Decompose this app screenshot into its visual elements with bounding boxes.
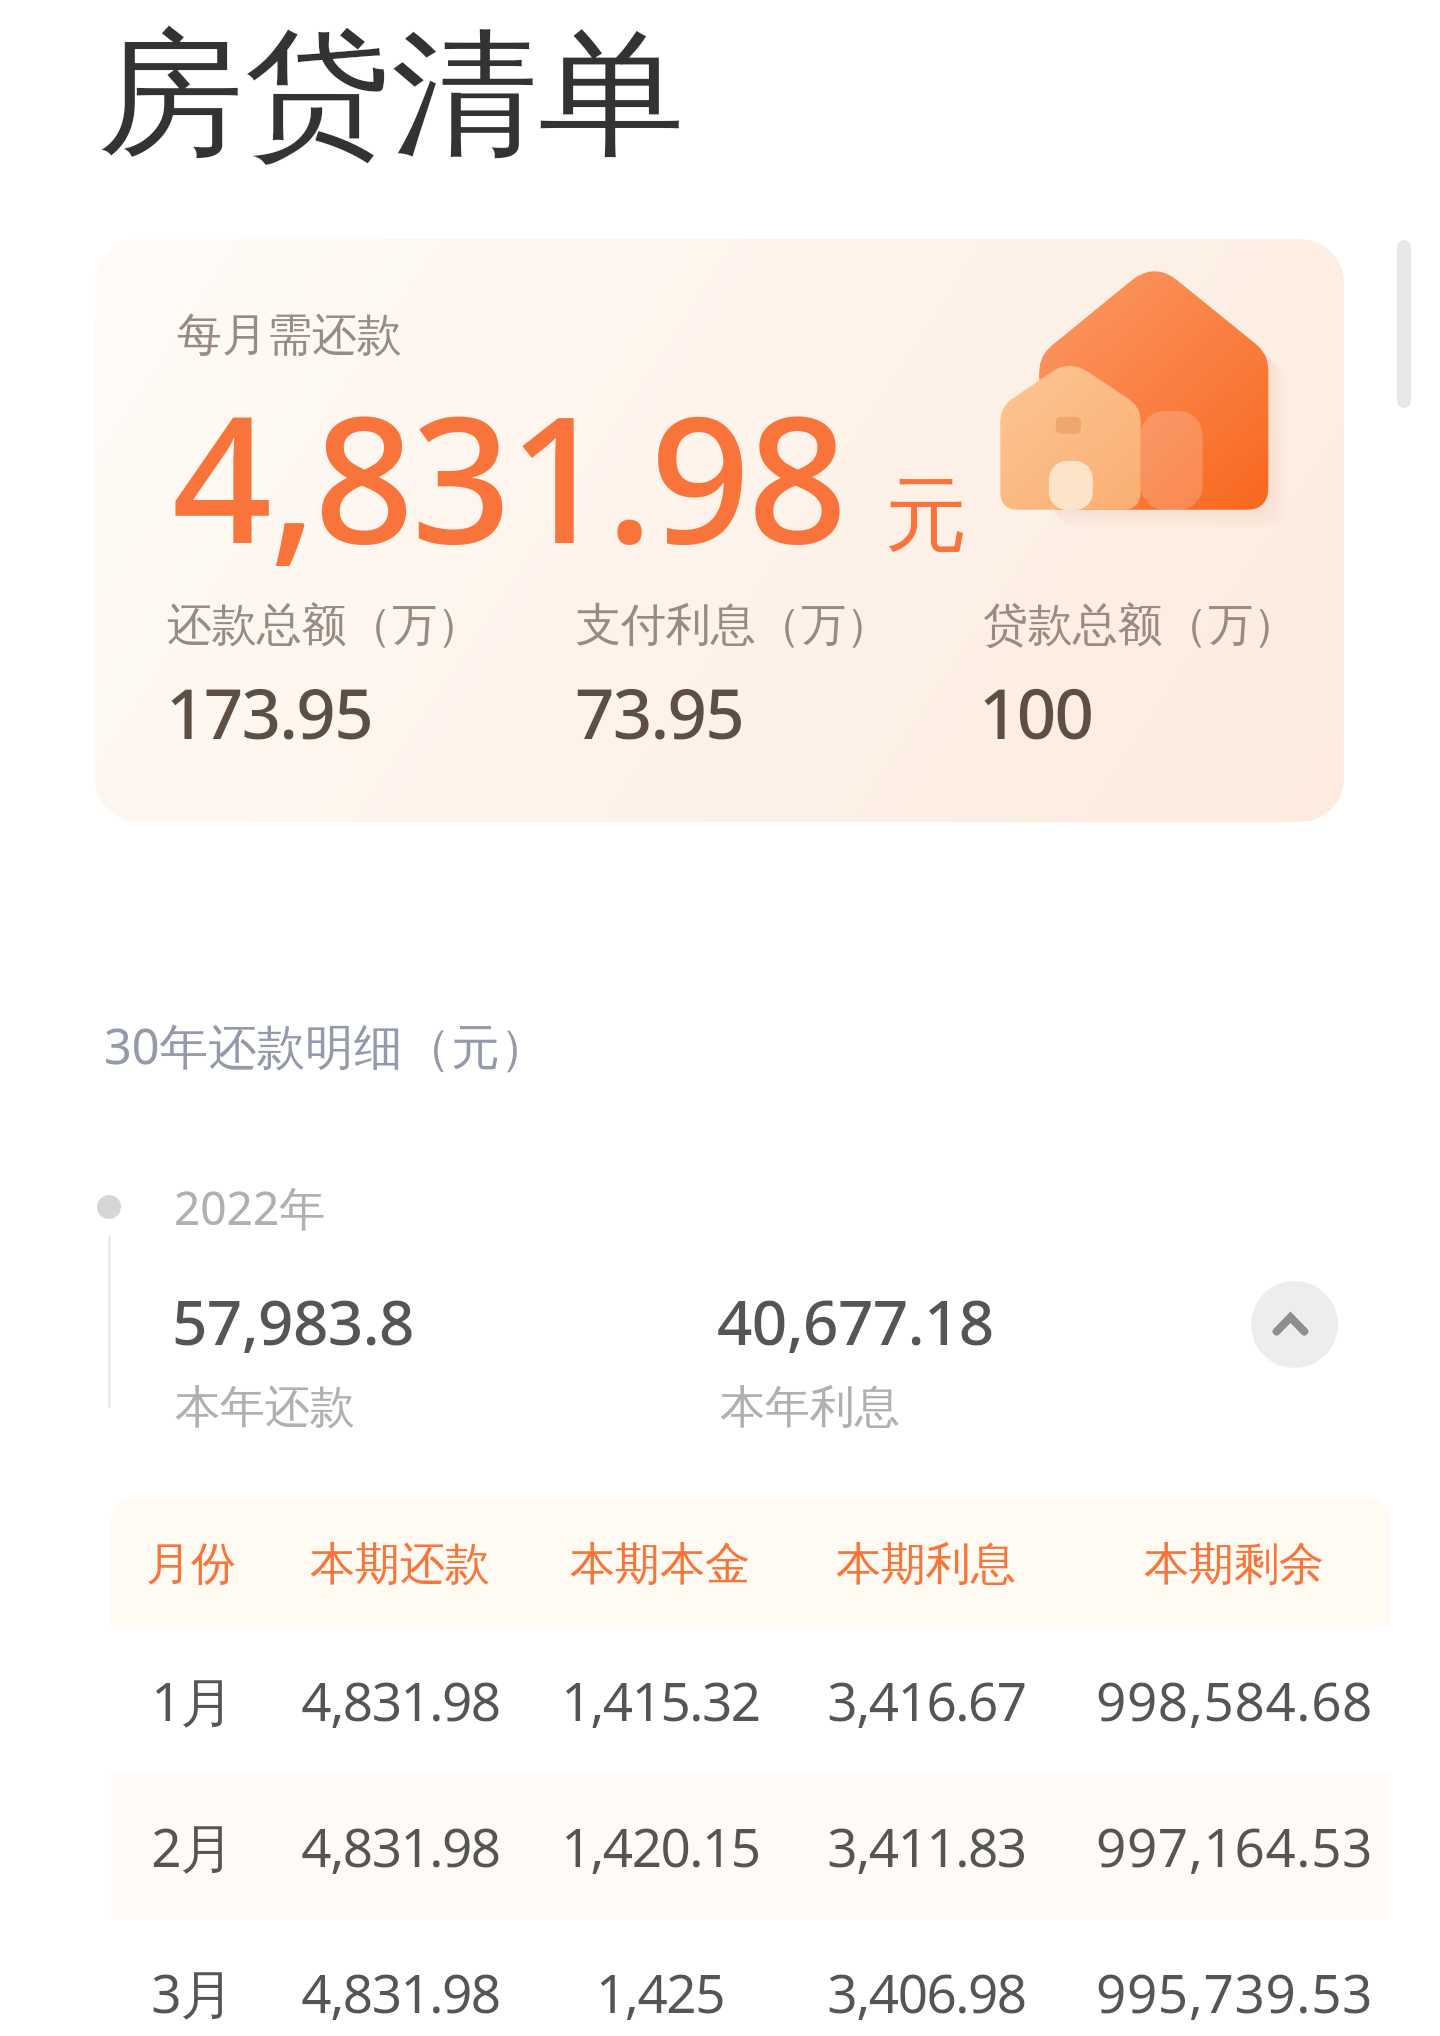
staticText: 3,416.67 xyxy=(827,1664,1026,1736)
staticText: 4,831.98 xyxy=(301,1810,500,1882)
staticText: 73.95 xyxy=(575,665,744,759)
staticText: 997,164.53 xyxy=(1096,1810,1373,1882)
staticText: 3,411.83 xyxy=(827,1810,1026,1882)
button[interactable]: 2月 xyxy=(111,1773,1389,1919)
staticText: 100 xyxy=(979,665,1093,759)
staticText: 1,420.15 xyxy=(561,1810,760,1882)
staticText: 3,406.98 xyxy=(827,1956,1026,2028)
staticText: 57,983.8 xyxy=(172,1279,414,1363)
staticText: 40,677.18 xyxy=(717,1279,994,1363)
staticText: 1,415.32 xyxy=(561,1664,760,1736)
staticText: 4,831.98 xyxy=(301,1664,500,1736)
staticText: 4,831.98 xyxy=(172,356,845,594)
staticText: 还款总额（万） xyxy=(167,597,482,654)
button[interactable]: 2022年 xyxy=(95,1170,1344,1460)
staticText: 1,425 xyxy=(596,1956,724,2028)
button[interactable]: 每月需还款 xyxy=(95,239,1344,822)
staticText: 4,831.98 xyxy=(301,1956,500,2028)
staticText: 本期剩余 xyxy=(1144,1536,1324,1593)
staticText: 房贷清单 xyxy=(97,10,685,181)
staticText: 1月 xyxy=(151,1664,232,1736)
staticText: 本年还款 xyxy=(175,1379,355,1436)
staticText: 3月 xyxy=(151,1956,232,2028)
staticText: 本期还款 xyxy=(310,1536,490,1593)
staticText: 2022年 xyxy=(174,1176,326,1239)
staticText: 元 xyxy=(885,464,967,567)
button[interactable]: Collapse 2022 xyxy=(1251,1281,1338,1368)
staticText: 998,584.68 xyxy=(1096,1664,1373,1736)
staticText: 30年还款明细（元） xyxy=(104,1012,549,1078)
button[interactable]: 3月 xyxy=(111,1919,1389,2036)
staticText: 月份 xyxy=(146,1536,236,1593)
staticText: 本年利息 xyxy=(720,1379,900,1436)
staticText: 173.95 xyxy=(166,665,372,759)
staticText: 支付利息（万） xyxy=(576,597,891,654)
staticText: 本期利息 xyxy=(836,1536,1016,1593)
staticText: 每月需还款 xyxy=(177,307,402,364)
staticText: 本期本金 xyxy=(570,1536,750,1593)
button[interactable]: 1月 xyxy=(111,1627,1389,1773)
staticText: 贷款总额（万） xyxy=(983,597,1298,654)
staticText: 995,739.53 xyxy=(1096,1956,1373,2028)
staticText: 2月 xyxy=(151,1810,232,1882)
